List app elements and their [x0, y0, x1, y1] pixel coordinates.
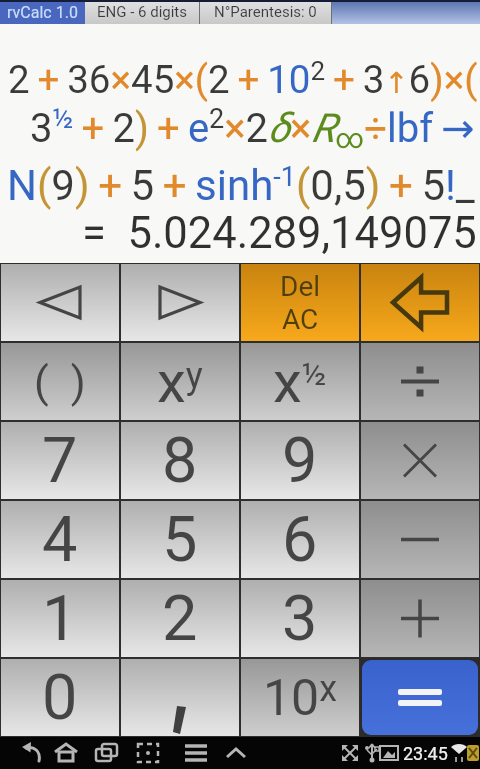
staticText: rvCalc 1.0	[7, 3, 78, 22]
staticText: 2	[162, 582, 198, 656]
button[interactable]: xy	[121, 343, 239, 420]
button[interactable]	[361, 264, 479, 341]
button[interactable]: 6	[241, 501, 359, 578]
button[interactable]	[84, 737, 126, 769]
button[interactable]: 9	[241, 422, 359, 499]
button[interactable]: 1	[1, 580, 119, 657]
staticText: x½	[273, 348, 327, 416]
button[interactable]: 4	[1, 501, 119, 578]
button[interactable]	[210, 737, 252, 769]
staticText: 1	[42, 582, 78, 656]
button[interactable]	[0, 737, 42, 769]
staticText: 4	[42, 503, 78, 577]
button[interactable]	[126, 737, 168, 769]
button[interactable]	[42, 737, 84, 769]
staticText: 6	[282, 503, 318, 577]
staticText: N(9) + 5 + sinh-1(0,5) + 5!_	[7, 161, 475, 210]
button[interactable]	[361, 343, 479, 420]
staticText: 2 + 36×45×(2 + 102 + 3↑6)×(	[8, 56, 478, 103]
button[interactable]	[121, 659, 239, 736]
button[interactable]: 3	[241, 580, 359, 657]
staticText: ENG - 6 digits	[97, 3, 188, 21]
staticText: 23:45	[403, 743, 448, 764]
staticText: 9	[282, 424, 318, 498]
button[interactable]	[362, 660, 478, 735]
staticText: 3½ + 2) + e2×2δ×R∞÷lbf →	[30, 103, 475, 153]
staticText: 8	[162, 424, 198, 498]
button[interactable]: 5	[121, 501, 239, 578]
button[interactable]	[121, 264, 239, 341]
button[interactable]	[361, 422, 479, 499]
button[interactable]	[361, 501, 479, 578]
staticText: 10x	[263, 668, 338, 727]
staticText: 7	[42, 424, 78, 498]
staticText: xy	[157, 348, 203, 416]
button[interactable]: ( )	[1, 343, 119, 420]
staticText: N°Parentesis: 0	[214, 3, 317, 21]
staticText: = 5.024.289,149075	[82, 208, 477, 258]
staticText: AC	[282, 303, 319, 336]
button[interactable]	[361, 580, 479, 657]
button[interactable]: x½	[241, 343, 359, 420]
button[interactable]: Del	[241, 264, 359, 341]
button[interactable]: 7	[1, 422, 119, 499]
button[interactable]: N°Parentesis: 0	[200, 0, 331, 24]
button[interactable]: 8	[121, 422, 239, 499]
staticText: ( )	[34, 357, 86, 407]
button[interactable]	[1, 264, 119, 341]
button[interactable]: 2	[121, 580, 239, 657]
button[interactable]: rvCalc 1.0	[0, 0, 85, 24]
button[interactable]	[168, 737, 210, 769]
button[interactable]: 0	[1, 659, 119, 736]
button[interactable]: ENG - 6 digits	[85, 0, 199, 24]
staticText: Del	[280, 270, 321, 303]
staticText: 5	[162, 503, 198, 577]
staticText: 3	[282, 582, 318, 656]
staticText: 0	[42, 661, 78, 735]
button[interactable]: 10x	[241, 659, 359, 736]
